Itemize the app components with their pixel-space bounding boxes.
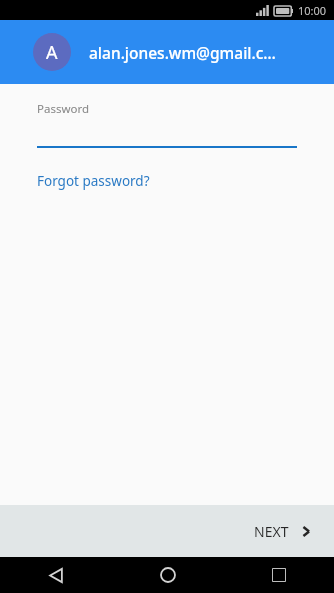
button[interactable]: Back — [0, 557, 112, 593]
staticText: Password — [37, 101, 90, 117]
button[interactable]: Home — [112, 557, 223, 593]
button[interactable]: NEXT — [230, 512, 334, 551]
staticText: Forgot password? — [37, 172, 150, 190]
staticText: 10:00 — [298, 3, 327, 18]
staticText: A — [46, 40, 58, 65]
button[interactable]: Forgot password? — [37, 170, 150, 192]
staticText: NEXT — [254, 522, 289, 541]
button[interactable]: Recent apps — [223, 557, 334, 593]
staticText: alan.jones.wm@gmail.c… — [89, 42, 276, 63]
button[interactable]: A — [0, 20, 334, 84]
